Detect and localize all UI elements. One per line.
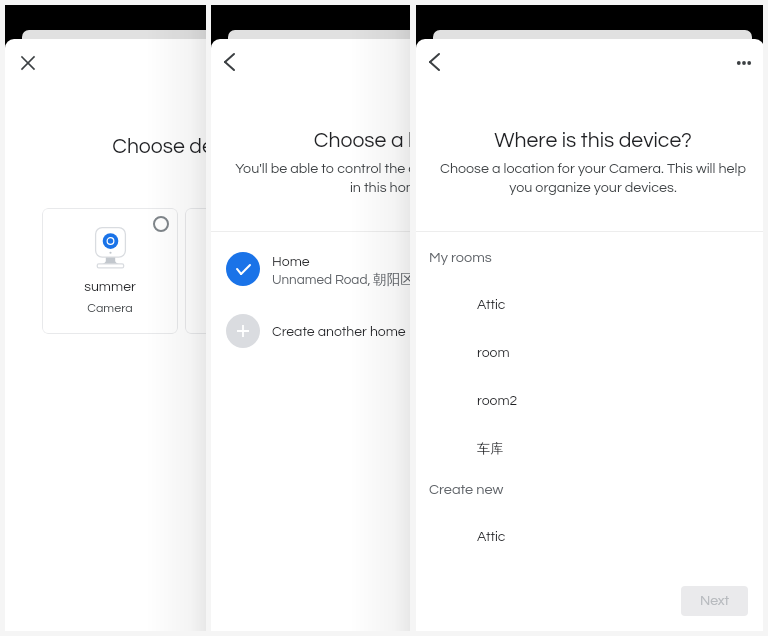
button[interactable]: More options bbox=[728, 47, 760, 79]
button[interactable]: living ro bbox=[185, 208, 206, 334]
staticText: Home bbox=[272, 255, 310, 269]
staticText: Choose device bbox=[22, 136, 206, 158]
button[interactable]: Attic bbox=[416, 274, 763, 322]
button[interactable]: Attic bbox=[416, 506, 763, 554]
staticText: Attic bbox=[477, 298, 506, 312]
button[interactable]: Back bbox=[213, 46, 245, 78]
staticText: My rooms bbox=[429, 250, 492, 265]
staticText: Create another home bbox=[272, 325, 406, 339]
staticText: Unnamed Road, 朝阳区北京市中国 bbox=[272, 271, 410, 288]
button[interactable]: room bbox=[416, 322, 763, 370]
staticText: Where is this device? bbox=[433, 130, 753, 152]
staticText: Choose a home bbox=[228, 130, 410, 152]
button[interactable]: 车库 bbox=[416, 416, 763, 464]
staticText: You'll be able to control the devices an… bbox=[223, 161, 410, 195]
staticText: room2 bbox=[477, 394, 518, 408]
staticText: living ro bbox=[185, 280, 206, 294]
staticText: 车库 bbox=[477, 440, 504, 457]
staticText: Camera bbox=[185, 302, 206, 315]
staticText: Attic bbox=[477, 530, 506, 544]
staticText: Create new bbox=[429, 482, 504, 497]
button[interactable]: Next bbox=[681, 586, 748, 616]
button[interactable]: Close bbox=[12, 47, 44, 79]
staticText: Camera bbox=[42, 302, 178, 315]
staticText: summer bbox=[42, 280, 178, 294]
staticText: Choose a location for your Camera. This … bbox=[428, 161, 758, 195]
button[interactable]: room2 bbox=[416, 370, 763, 418]
button[interactable]: summer bbox=[42, 208, 178, 334]
button[interactable] bbox=[211, 240, 410, 298]
staticText: room bbox=[477, 346, 510, 360]
button[interactable]: Back bbox=[418, 46, 450, 78]
staticText: Next bbox=[700, 594, 730, 608]
button[interactable] bbox=[211, 301, 410, 359]
